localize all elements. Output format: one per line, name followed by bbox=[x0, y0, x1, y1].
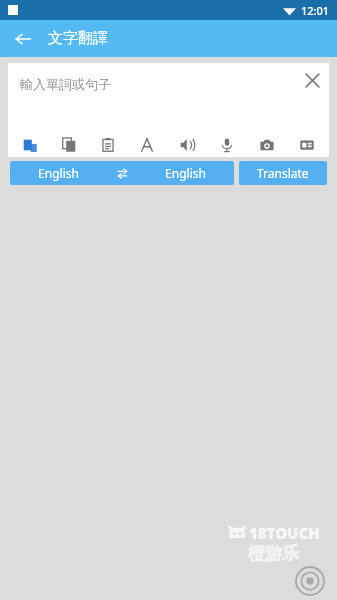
staticText: Translate bbox=[257, 165, 309, 181]
button[interactable]: Clear bbox=[295, 63, 329, 97]
button[interactable]: Camera translate bbox=[287, 133, 327, 157]
staticText: English bbox=[165, 165, 206, 181]
staticText: 輸入單詞或句子 bbox=[20, 76, 111, 92]
button[interactable]: Translate bbox=[239, 161, 327, 185]
staticText: 18TOUCH bbox=[249, 523, 320, 543]
button[interactable]: Assistive touch bbox=[293, 564, 327, 598]
staticText: English bbox=[38, 165, 79, 181]
button[interactable]: English bbox=[137, 161, 234, 185]
button[interactable]: Voice input bbox=[207, 133, 247, 157]
staticText: 橙游乐 bbox=[248, 543, 299, 564]
button[interactable]: Handwriting bbox=[10, 133, 49, 157]
staticText: 12:01 bbox=[301, 3, 330, 18]
button[interactable]: Swap languages bbox=[107, 161, 137, 185]
button[interactable]: English bbox=[10, 161, 107, 185]
button[interactable]: Camera bbox=[247, 133, 287, 157]
button[interactable]: Paste bbox=[88, 133, 127, 157]
button[interactable]: Copy bbox=[49, 133, 88, 157]
button[interactable]: Keyboard text bbox=[127, 133, 167, 157]
button[interactable]: Back bbox=[6, 22, 40, 56]
staticText: 文字翻譯 bbox=[48, 29, 108, 48]
button[interactable]: Speak bbox=[167, 133, 207, 157]
